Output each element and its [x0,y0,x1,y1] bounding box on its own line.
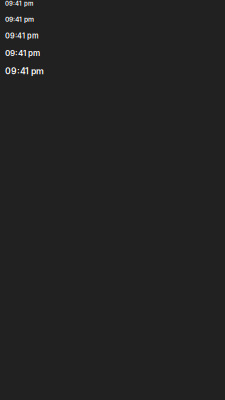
staticText: 09:41 pm [5,48,40,58]
staticText: 09:41 pm [5,0,33,7]
staticText: 09:41 pm [5,15,34,23]
staticText: 09:41 pm [5,31,39,40]
staticText: 09:41 pm [5,66,44,76]
